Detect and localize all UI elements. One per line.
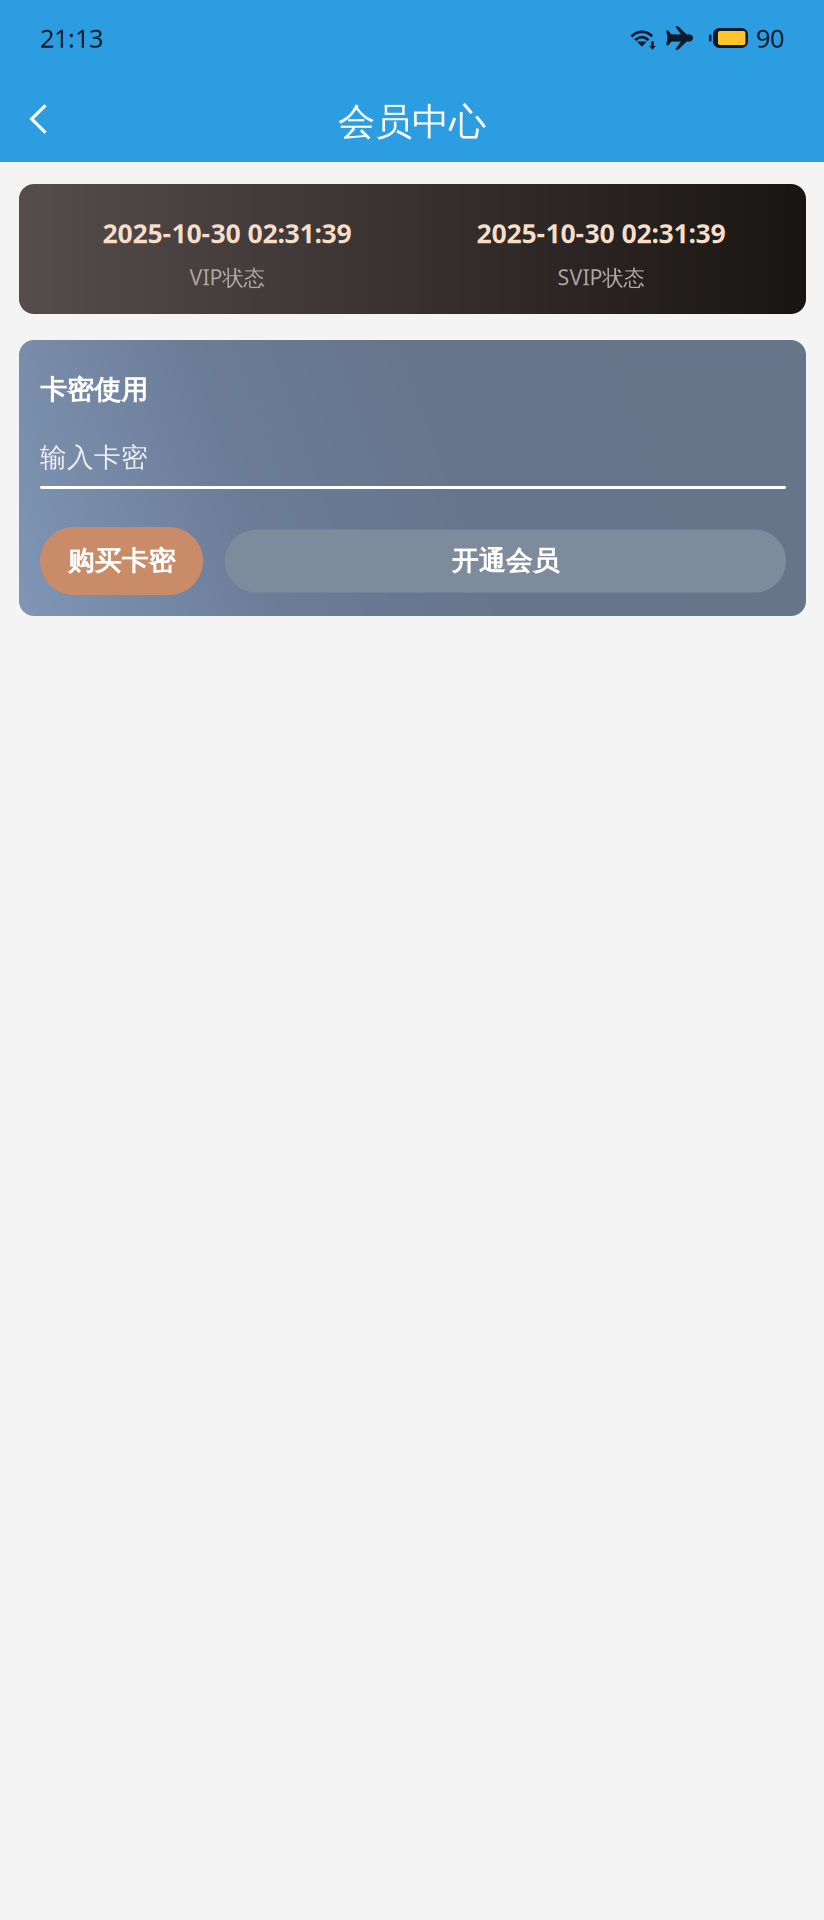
staticText: 21:13 [40,21,103,55]
staticText: 2025-10-30 02:31:39 [102,215,351,251]
staticText: 购买卡密 [67,545,175,577]
button[interactable]: 购买卡密 [40,527,203,595]
staticText: 2025-10-30 02:31:39 [476,215,725,251]
button[interactable]: 开通会员 [225,529,786,592]
staticText: 开通会员 [451,545,559,577]
staticText: 输入卡密 [40,441,148,474]
button[interactable]: Back [0,82,76,162]
staticText: 90 [756,21,784,55]
staticText: 卡密使用 [40,374,148,406]
staticText: 会员中心 [338,99,486,145]
staticText: VIP状态 [189,263,264,291]
staticText: SVIP状态 [557,263,644,291]
